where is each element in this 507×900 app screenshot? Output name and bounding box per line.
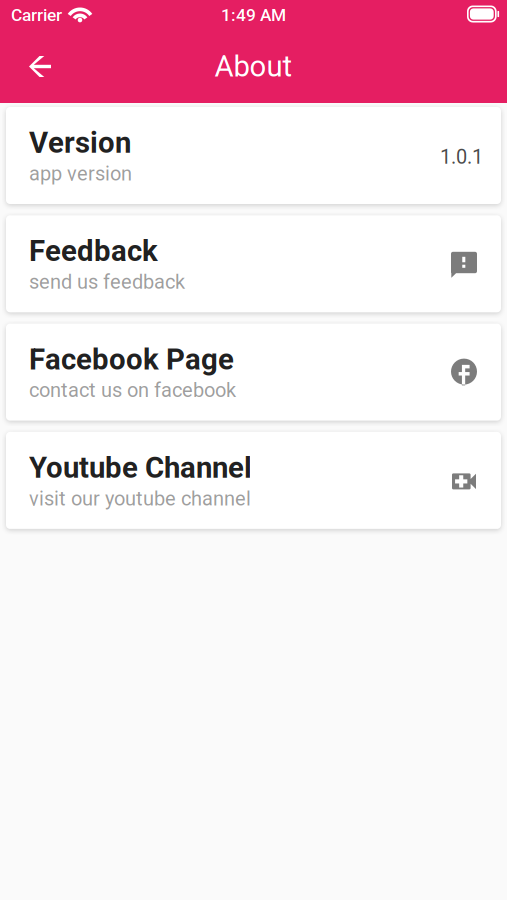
button[interactable]: Version <box>6 107 501 204</box>
staticText: About <box>214 49 292 84</box>
staticText: Carrier <box>11 5 62 25</box>
staticText: visit our youtube channel <box>29 487 251 510</box>
button[interactable]: Back <box>0 39 69 94</box>
staticText: contact us on facebook <box>29 379 236 402</box>
staticText: Facebook Page <box>29 342 234 377</box>
staticText: 1:49 AM <box>221 5 286 25</box>
button[interactable]: Facebook Page <box>6 324 501 421</box>
staticText: Feedback <box>29 234 158 268</box>
staticText: app version <box>29 162 132 185</box>
staticText: 1.0.1 <box>440 145 483 169</box>
staticText: Version <box>29 126 131 160</box>
button[interactable]: Youtube Channel <box>6 432 501 529</box>
staticText: send us feedback <box>29 270 185 294</box>
staticText: Youtube Channel <box>29 450 252 485</box>
button[interactable]: Feedback <box>6 215 501 312</box>
